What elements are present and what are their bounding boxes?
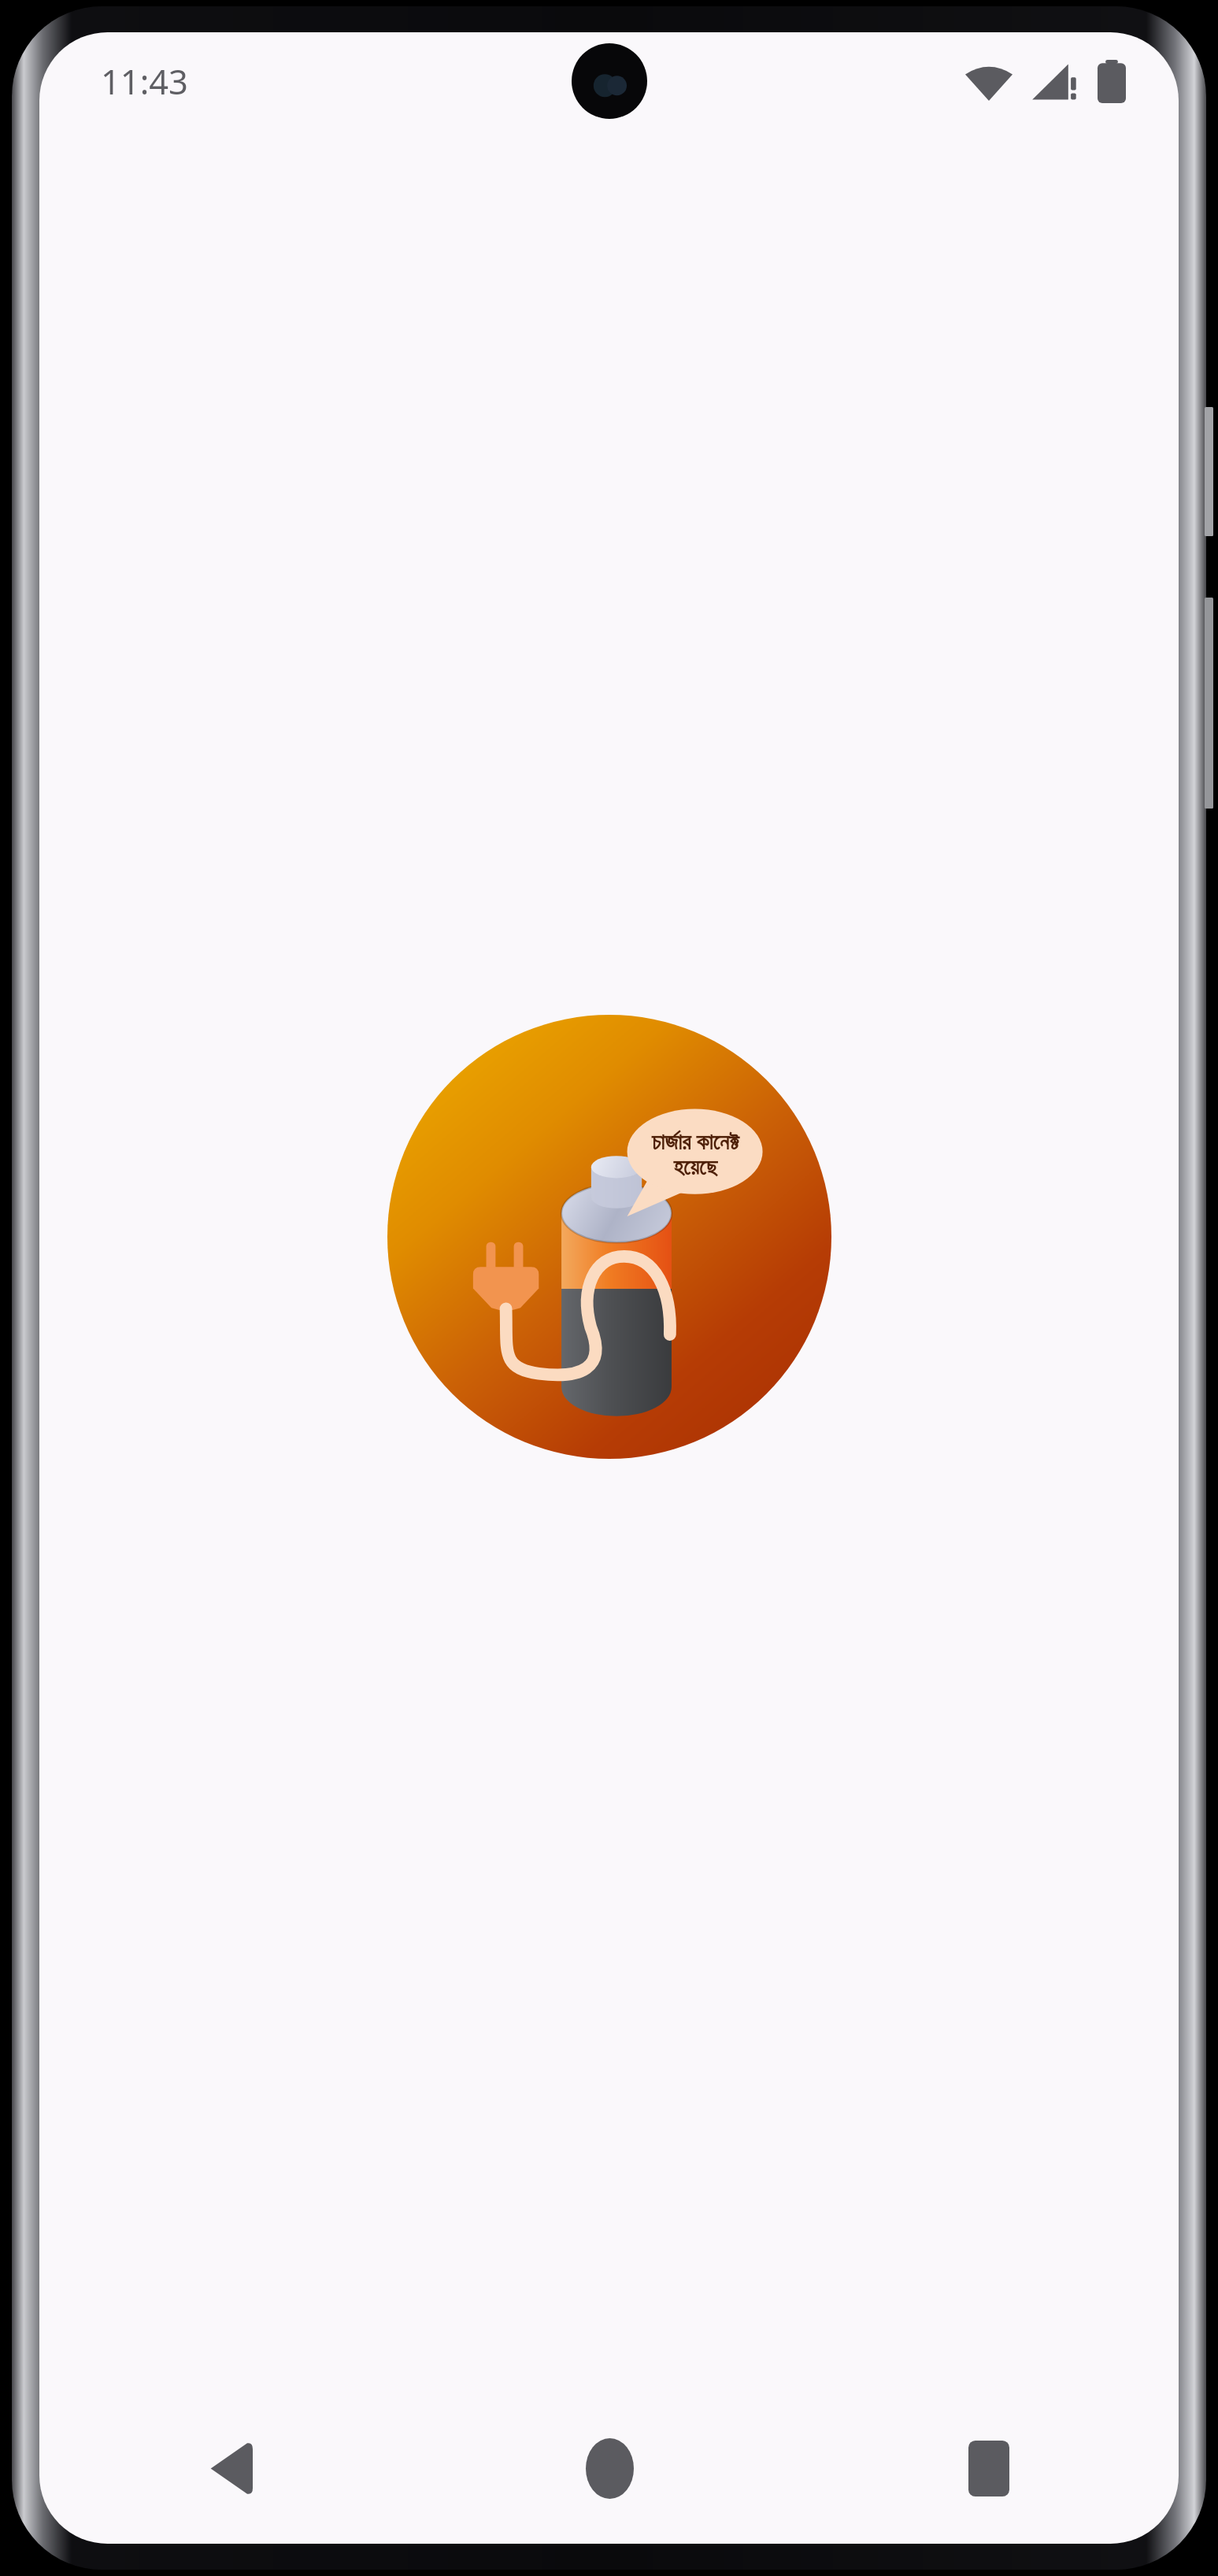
button[interactable]: Charger connected (387, 1015, 831, 1459)
staticText: 11:43 (101, 58, 188, 105)
button[interactable]: Back (39, 2393, 420, 2544)
staticText: চার্জার কানেক্ট হয়েছে (631, 1126, 760, 1179)
button[interactable]: Recent apps (799, 2393, 1179, 2544)
button[interactable]: Home (420, 2393, 799, 2544)
